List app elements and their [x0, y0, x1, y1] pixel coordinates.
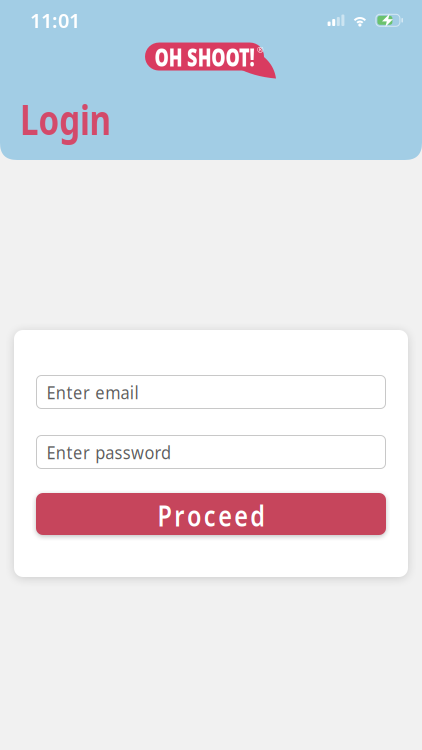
staticText: P r o c e e d [144, 495, 278, 534]
button[interactable]: Proceed [36, 493, 386, 535]
button[interactable]: Enter password [36, 435, 386, 469]
staticText: Enter email [46, 380, 151, 404]
staticText: Enter password [46, 440, 188, 464]
staticText: 11:01 [30, 7, 80, 34]
staticText: ® [257, 45, 264, 55]
staticText: OH SHOOT! [134, 40, 275, 73]
button[interactable]: Enter email [36, 375, 386, 409]
staticText: Login [20, 92, 134, 146]
